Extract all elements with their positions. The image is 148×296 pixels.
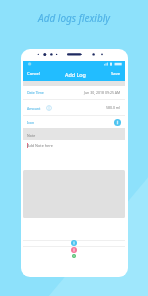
staticText: Add logs flexibly [0,11,148,25]
button[interactable]: Tea [72,254,76,258]
button[interactable]: Date Time [23,86,125,99]
staticText: Add Log [65,71,86,78]
button[interactable]: Juice [71,247,77,253]
button[interactable]: Icon [23,116,125,128]
staticText: Amount [27,106,41,111]
staticText: Add Note here [27,143,53,148]
other: Choose drink icon [114,119,121,126]
staticText: Cancel [27,71,41,77]
staticText: Date Time [27,90,44,95]
button[interactable]: Amount [23,100,125,115]
staticText: 580.0 ml [106,105,121,110]
staticText: Jun 30, 2018 09:25 AM [84,90,121,95]
staticText: Note [27,133,36,138]
button[interactable]: Cancel [26,69,42,79]
button[interactable]: Save [110,69,122,79]
button[interactable]: Water 580 ml [71,240,77,246]
staticText: Icon [27,120,35,125]
staticText: Save [111,71,121,77]
